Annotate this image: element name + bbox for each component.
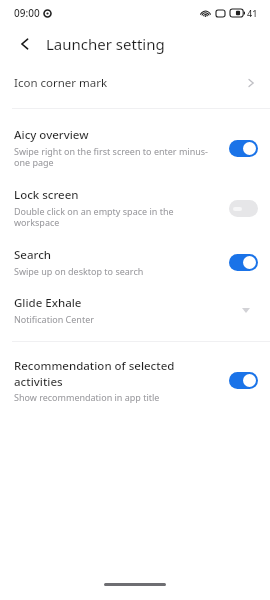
staticText: 41 <box>247 7 258 19</box>
button[interactable]: Toggle on <box>229 140 258 157</box>
button[interactable]: Recommendation of selected activities <box>0 358 270 403</box>
button[interactable]: Back <box>12 31 38 57</box>
button[interactable]: Toggle off <box>229 200 258 217</box>
staticText: Notification Center <box>14 313 94 325</box>
staticText: Double click on an empty space in the wo… <box>14 205 219 229</box>
staticText: 09:00 <box>14 6 40 20</box>
staticText: Launcher setting <box>46 34 165 54</box>
staticText: Show recommendation in app title <box>14 391 160 403</box>
button[interactable]: Lock screen <box>0 187 270 229</box>
staticText: Recommendation of selected activities <box>14 358 219 389</box>
staticText: Search <box>14 247 51 263</box>
button[interactable]: Icon corner mark <box>0 68 270 98</box>
button[interactable]: Glide Exhale <box>0 295 270 325</box>
button[interactable]: Search <box>0 247 270 277</box>
button[interactable]: Aicy overview <box>0 127 270 169</box>
staticText: Lock screen <box>14 187 79 203</box>
staticText: Swipe right on the first screen to enter… <box>14 145 219 169</box>
staticText: Swipe up on desktop to search <box>14 265 144 277</box>
button[interactable]: Toggle on <box>229 372 258 389</box>
staticText: Aicy overview <box>14 127 89 143</box>
staticText: Icon corner mark <box>14 75 246 91</box>
button[interactable]: Toggle on <box>229 254 258 271</box>
staticText: Glide Exhale <box>14 295 82 311</box>
button[interactable]: Expand <box>234 298 258 322</box>
